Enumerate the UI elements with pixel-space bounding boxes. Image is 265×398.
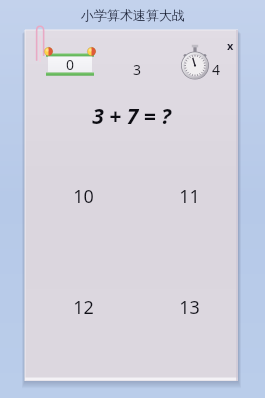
staticText: 13 <box>179 295 200 320</box>
button[interactable]: 13 <box>163 292 215 322</box>
staticText: 3 <box>133 60 142 79</box>
staticText: 0 <box>66 55 75 74</box>
button[interactable]: 12 <box>57 292 109 322</box>
button[interactable]: 10 <box>57 181 109 211</box>
staticText: 12 <box>73 295 94 320</box>
staticText: 10 <box>73 184 94 209</box>
staticText: 3 + 7 = ? <box>92 102 171 131</box>
button[interactable]: 11 <box>163 181 215 211</box>
staticText: 11 <box>179 184 200 209</box>
staticText: x <box>227 38 234 52</box>
other: Timer <box>180 42 210 80</box>
staticText: 4 <box>212 60 221 79</box>
button[interactable]: Close <box>223 38 237 52</box>
staticText: 小学算术速算大战 <box>81 7 185 23</box>
